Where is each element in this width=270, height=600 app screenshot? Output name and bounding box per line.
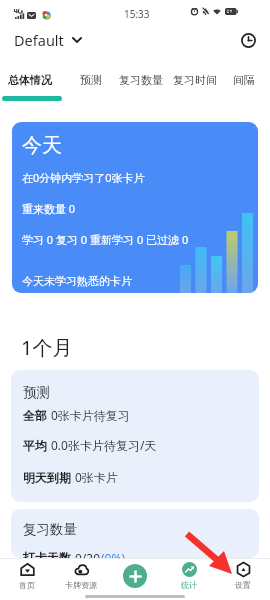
- staticText: 1个月: [21, 334, 73, 361]
- staticText: 复习数量: [119, 73, 163, 87]
- staticText: 总体情况: [8, 73, 52, 87]
- button[interactable]: 复习数量: [119, 64, 163, 96]
- button[interactable]: 今天: [12, 122, 258, 293]
- staticText: 预测: [80, 73, 102, 87]
- staticText: 设置: [235, 580, 251, 590]
- staticText: 今天: [22, 133, 62, 158]
- staticText: 0张卡片: [75, 469, 118, 485]
- button[interactable]: 预测: [80, 64, 102, 96]
- button[interactable]: 间隔: [233, 64, 255, 96]
- staticText: 0/30: [75, 550, 101, 558]
- button[interactable]: 设置: [216, 558, 270, 593]
- staticText: 今天未学习熟悉的卡片: [22, 274, 132, 288]
- staticText: 复习数量: [23, 521, 77, 538]
- button[interactable]: 复习数量: [11, 509, 259, 558]
- button[interactable]: History: [234, 26, 262, 54]
- staticText: 在0分钟内学习了0张卡片: [22, 170, 145, 185]
- staticText: 学习 0 复习 0 重新学习 0 已过滤 0: [22, 232, 189, 247]
- staticText: 预测: [23, 384, 50, 401]
- staticText: 全部: [23, 408, 47, 423]
- staticText: 0张卡片待复习: [51, 407, 130, 423]
- button[interactable]: 卡牌资源: [54, 558, 108, 593]
- staticText: Default: [14, 30, 64, 50]
- staticText: 复习时间: [173, 73, 217, 87]
- staticText: 重来数量 0: [22, 201, 76, 216]
- staticText: 首页: [19, 580, 35, 590]
- staticText: 15:33: [124, 7, 150, 21]
- staticText: 平均: [23, 438, 47, 453]
- button[interactable]: Default: [8, 26, 88, 54]
- button[interactable]: 统计: [162, 558, 216, 593]
- staticText: 0.0张卡片待复习/天: [51, 437, 157, 453]
- button[interactable]: Add: [123, 564, 147, 588]
- staticText: 打卡天数: [23, 550, 71, 558]
- staticText: 间隔: [233, 73, 255, 87]
- staticText: 明天到期: [23, 470, 71, 485]
- button[interactable]: 首页: [0, 558, 54, 593]
- button[interactable]: 总体情况: [8, 64, 52, 96]
- staticText: 统计: [181, 580, 197, 590]
- button[interactable]: 预测: [11, 370, 259, 502]
- staticText: 卡牌资源: [65, 580, 97, 590]
- button[interactable]: 复习时间: [173, 64, 217, 96]
- staticText: (0%): [101, 550, 126, 558]
